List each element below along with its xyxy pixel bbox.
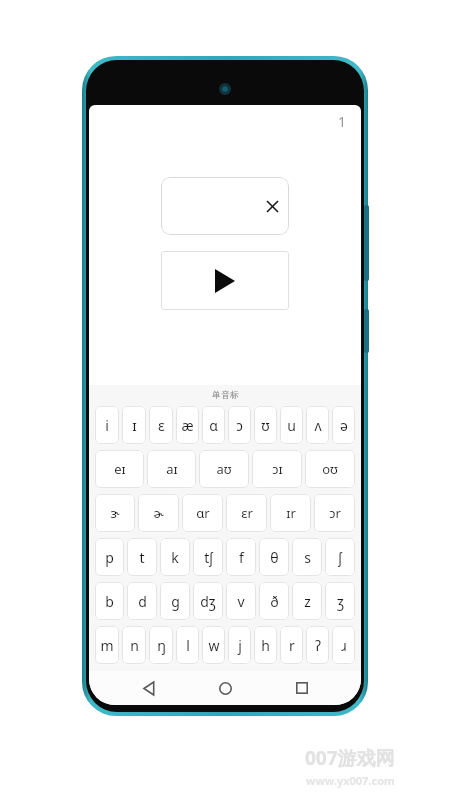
button[interactable]: Play xyxy=(161,251,289,310)
button[interactable]: ɑ xyxy=(202,406,225,444)
staticText: ɛr xyxy=(241,504,253,522)
staticText: ɹ xyxy=(341,636,347,655)
staticText: l xyxy=(186,636,190,655)
staticText: ʃ xyxy=(338,548,342,567)
button[interactable]: oʊ xyxy=(305,450,355,488)
staticText: t xyxy=(139,548,145,567)
button[interactable]: z xyxy=(292,582,322,620)
button[interactable]: d xyxy=(127,582,157,620)
staticText: ɛ xyxy=(158,416,165,435)
staticText: ʌ xyxy=(314,416,322,435)
button[interactable]: ʊ xyxy=(254,406,277,444)
staticText: ə xyxy=(340,416,348,435)
button[interactable]: k xyxy=(160,538,190,576)
staticText: s xyxy=(304,548,311,567)
staticText: ɔɪ xyxy=(272,460,283,478)
staticText: v xyxy=(237,592,245,611)
button[interactable]: Clear xyxy=(161,177,289,235)
button[interactable]: ɔɪ xyxy=(252,450,302,488)
staticText: ŋ xyxy=(157,636,166,655)
button[interactable]: s xyxy=(292,538,322,576)
staticText: ɑ xyxy=(209,416,218,435)
button[interactable]: ʌ xyxy=(306,406,329,444)
button[interactable]: ŋ xyxy=(149,626,173,664)
button[interactable]: θ xyxy=(259,538,289,576)
staticText: aʊ xyxy=(216,460,232,478)
button[interactable]: ɔr xyxy=(314,494,355,532)
button[interactable]: dʒ xyxy=(193,582,223,620)
button[interactable]: tʃ xyxy=(193,538,223,576)
staticText: n xyxy=(130,636,139,655)
staticText: tʃ xyxy=(204,548,213,567)
staticText: ɪr xyxy=(286,504,296,522)
button[interactable]: r xyxy=(280,626,303,664)
staticText: h xyxy=(261,636,270,655)
staticText: 007游戏网 xyxy=(305,745,395,771)
staticText: ɚ xyxy=(153,504,164,522)
staticText: ɝ xyxy=(110,504,120,522)
button[interactable]: l xyxy=(176,626,199,664)
staticText: j xyxy=(238,636,242,655)
staticText: eɪ xyxy=(114,460,126,478)
button[interactable]: h xyxy=(254,626,277,664)
staticText: d xyxy=(138,592,147,611)
staticText: oʊ xyxy=(322,460,338,478)
button[interactable]: eɪ xyxy=(95,450,144,488)
button[interactable]: ɔ xyxy=(228,406,251,444)
button[interactable]: u xyxy=(280,406,303,444)
staticText: ɔr xyxy=(329,504,341,522)
button[interactable]: aɪ xyxy=(147,450,196,488)
staticText: w xyxy=(208,636,220,655)
staticText: u xyxy=(287,416,296,435)
button[interactable]: ɹ xyxy=(332,626,355,664)
button[interactable]: Clear xyxy=(261,195,283,217)
staticText: ð xyxy=(270,592,279,611)
button[interactable]: f xyxy=(226,538,256,576)
staticText: ʔ xyxy=(315,636,321,655)
staticText: 1 xyxy=(338,112,347,131)
button[interactable]: ɪ xyxy=(122,406,146,444)
staticText: ʒ xyxy=(337,592,344,611)
staticText: p xyxy=(105,548,114,567)
button[interactable]: ɝ xyxy=(95,494,135,532)
button[interactable]: Back xyxy=(130,671,166,705)
button[interactable]: ɛr xyxy=(226,494,267,532)
button[interactable]: w xyxy=(202,626,225,664)
staticText: θ xyxy=(270,548,279,567)
staticText: k xyxy=(171,548,179,567)
button[interactable]: aʊ xyxy=(199,450,249,488)
button[interactable]: m xyxy=(95,626,119,664)
button[interactable]: j xyxy=(228,626,251,664)
staticText: www.yx007.com xyxy=(306,773,395,788)
staticText: dʒ xyxy=(200,592,216,611)
button[interactable]: ə xyxy=(332,406,355,444)
button[interactable]: n xyxy=(122,626,146,664)
staticText: g xyxy=(171,592,180,611)
staticText: b xyxy=(105,592,114,611)
button[interactable]: ð xyxy=(259,582,289,620)
button[interactable]: p xyxy=(95,538,124,576)
button[interactable]: ʃ xyxy=(325,538,355,576)
button[interactable]: v xyxy=(226,582,256,620)
button[interactable]: ɛ xyxy=(149,406,173,444)
button[interactable]: g xyxy=(160,582,190,620)
button[interactable]: ʒ xyxy=(325,582,355,620)
staticText: z xyxy=(304,592,311,611)
button[interactable]: ɪr xyxy=(270,494,311,532)
staticText: f xyxy=(239,548,244,567)
button[interactable]: ɑr xyxy=(182,494,223,532)
button[interactable]: Home xyxy=(207,671,243,705)
button[interactable]: Recent apps xyxy=(284,671,320,705)
staticText: r xyxy=(289,636,295,655)
staticText: æ xyxy=(181,416,194,435)
button[interactable]: t xyxy=(127,538,157,576)
button[interactable]: ʔ xyxy=(306,626,329,664)
button[interactable]: i xyxy=(95,406,119,444)
staticText: ɪ xyxy=(132,416,137,435)
staticText: ɔ xyxy=(236,416,243,435)
button[interactable]: ɚ xyxy=(138,494,179,532)
staticText: m xyxy=(100,636,114,655)
button[interactable]: b xyxy=(95,582,124,620)
staticText: ɑr xyxy=(196,504,210,522)
button[interactable]: æ xyxy=(176,406,199,444)
